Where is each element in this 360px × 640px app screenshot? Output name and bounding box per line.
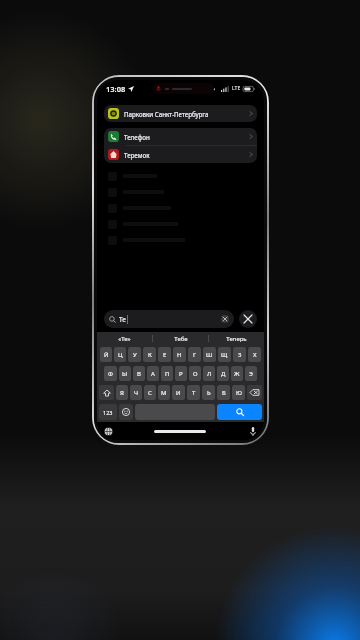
button[interactable]: Е xyxy=(158,347,171,362)
button[interactable]: Тебе xyxy=(153,332,208,345)
staticText: Тебе xyxy=(174,335,188,343)
button[interactable]: Ы xyxy=(119,366,131,381)
staticText: Ь xyxy=(207,389,211,397)
staticText: Ф xyxy=(108,370,113,378)
staticText: Е xyxy=(163,351,167,359)
staticText: Теремок xyxy=(124,151,150,159)
button[interactable]: Те xyxy=(104,310,234,328)
staticText: Ч xyxy=(134,389,139,397)
button[interactable]: «Те» xyxy=(97,332,152,345)
button[interactable]: Voice input xyxy=(248,426,258,436)
staticText: З xyxy=(238,351,242,359)
staticText: Ш xyxy=(206,351,213,359)
staticText: Телефон xyxy=(124,133,150,141)
button[interactable]: Н xyxy=(173,347,186,362)
staticText: Ж xyxy=(234,370,240,378)
staticText: А xyxy=(151,370,155,378)
staticText: М xyxy=(161,389,167,397)
button[interactable]: Clear text xyxy=(221,315,229,323)
button[interactable]: Теремок xyxy=(104,146,257,163)
staticText: Н xyxy=(177,351,182,359)
staticText: Э xyxy=(249,370,253,378)
staticText: Теперь xyxy=(226,335,247,343)
staticText: Парковки Санкт-Петербурга xyxy=(124,110,209,118)
button[interactable]: Щ xyxy=(218,347,231,362)
button[interactable]: Д xyxy=(217,366,229,381)
button[interactable]: Телефон xyxy=(104,128,257,145)
button[interactable]: Search xyxy=(217,404,262,420)
staticText: Щ xyxy=(221,351,228,359)
staticText: Д xyxy=(221,370,226,378)
button[interactable]: Emoji xyxy=(119,404,133,420)
button[interactable]: Ш xyxy=(203,347,216,362)
button[interactable]: Change keyboard language xyxy=(103,426,113,436)
staticText: И xyxy=(176,389,181,397)
button[interactable]: У xyxy=(128,347,141,362)
staticText: Ы xyxy=(122,370,128,378)
button[interactable]: 123 xyxy=(99,404,117,420)
button[interactable]: А xyxy=(147,366,159,381)
staticText: «Те» xyxy=(118,335,131,343)
button[interactable]: Close search xyxy=(239,310,257,328)
button[interactable]: Б xyxy=(217,385,230,400)
button[interactable]: Г xyxy=(188,347,201,362)
staticText: Ю xyxy=(236,389,242,397)
button[interactable]: П xyxy=(161,366,173,381)
button[interactable]: Теперь xyxy=(209,332,264,345)
button[interactable]: З xyxy=(233,347,246,362)
button[interactable]: Парковки Санкт-Петербурга xyxy=(104,105,257,122)
staticText: У xyxy=(133,351,137,359)
staticText: Т xyxy=(192,389,196,397)
staticText: Я xyxy=(120,389,124,397)
button[interactable]: Ч xyxy=(130,385,142,400)
staticText: Ц xyxy=(118,351,123,359)
staticText: О xyxy=(193,370,198,378)
button[interactable]: С xyxy=(144,385,156,400)
button[interactable]: Ц xyxy=(114,347,126,362)
button[interactable]: Backspace xyxy=(247,385,262,400)
staticText: 13:08 xyxy=(106,84,126,94)
button[interactable]: Ь xyxy=(202,385,215,400)
staticText: Б xyxy=(222,389,226,397)
button[interactable]: О xyxy=(189,366,201,381)
button[interactable]: Т xyxy=(187,385,200,400)
button[interactable]: В xyxy=(133,366,145,381)
button[interactable]: Ж xyxy=(231,366,243,381)
staticText: П xyxy=(165,370,170,378)
button[interactable]: И xyxy=(172,385,185,400)
staticText: Л xyxy=(207,370,212,378)
button[interactable]: К xyxy=(143,347,156,362)
staticText: Р xyxy=(179,370,183,378)
staticText: Й xyxy=(104,351,109,359)
staticText: LTE xyxy=(232,85,241,92)
staticText: С xyxy=(148,389,152,397)
staticText: В xyxy=(137,370,141,378)
button[interactable]: Р xyxy=(175,366,187,381)
staticText: 123 xyxy=(103,409,113,416)
staticText: Те xyxy=(119,315,126,324)
button[interactable]: М xyxy=(158,385,170,400)
button[interactable]: Я xyxy=(116,385,128,400)
button[interactable]: Э xyxy=(245,366,257,381)
staticText: Г xyxy=(193,351,197,359)
button[interactable]: Л xyxy=(203,366,215,381)
button[interactable]: Ф xyxy=(104,366,117,381)
button[interactable]: Shift xyxy=(99,385,114,400)
button[interactable]: Й xyxy=(100,347,112,362)
staticText: Х xyxy=(253,351,257,359)
button[interactable]: Х xyxy=(248,347,261,362)
button[interactable]: Ю xyxy=(232,385,245,400)
staticText: К xyxy=(148,351,152,359)
